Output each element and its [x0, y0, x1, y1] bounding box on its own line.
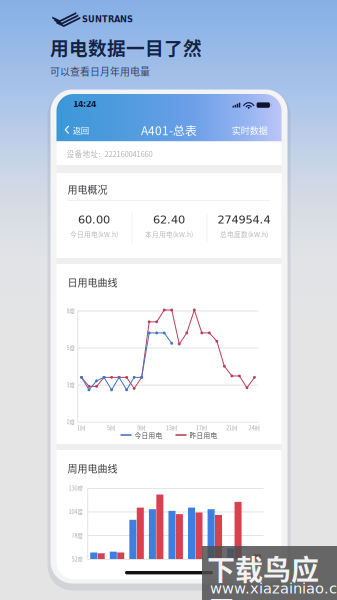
staticText: 本月用电(kW.h) [145, 229, 193, 239]
staticText: 1时 [77, 424, 86, 432]
staticText: 日用电曲线 [67, 275, 117, 289]
staticText: 21时 [226, 424, 238, 432]
staticText: 下载鸟应用 [207, 548, 319, 600]
staticText: SUNTRANS [82, 14, 133, 24]
staticText: 17时 [196, 424, 208, 432]
staticText: 设备地址: 222160041660 [66, 148, 152, 159]
staticText: 9时 [137, 424, 146, 432]
staticText: 78度 [71, 531, 83, 539]
staticText: 用电数据一目了然 [50, 33, 202, 60]
staticText: 5度 [66, 344, 75, 352]
staticText: 14:24 [73, 100, 96, 109]
staticText: 今日用电(kW.h) [70, 229, 118, 239]
staticText: 8度 [66, 307, 75, 315]
staticText: 5时 [107, 424, 116, 432]
staticText: 返回 [73, 124, 89, 136]
staticText: 3度 [66, 381, 75, 389]
button[interactable]: 返回 [59, 120, 94, 140]
button[interactable]: 实时数据 [227, 120, 273, 141]
staticText: 实时数据 [232, 124, 268, 137]
staticText: www.xiazainiao.com [210, 580, 337, 600]
staticText: 0度 [66, 418, 75, 426]
staticText: 24时 [248, 424, 260, 432]
staticText: 今日用电 [134, 430, 162, 440]
staticText: 13时 [166, 424, 178, 432]
staticText: 60.00 [78, 213, 110, 226]
staticText: 62.40 [153, 213, 185, 226]
staticText: 104度 [68, 508, 83, 516]
staticText: 总电度数(kW.h) [220, 229, 268, 239]
staticText: 130度 [68, 484, 83, 492]
staticText: 可以查看日月年用电量 [50, 64, 150, 78]
staticText: 昨日用电 [189, 430, 217, 440]
staticText: 周用电曲线 [67, 461, 117, 475]
staticText: 274954.4 [217, 213, 270, 226]
staticText: 用电概况 [67, 182, 107, 196]
staticText: 52度 [71, 555, 83, 563]
staticText: A401-总表 [141, 121, 197, 139]
